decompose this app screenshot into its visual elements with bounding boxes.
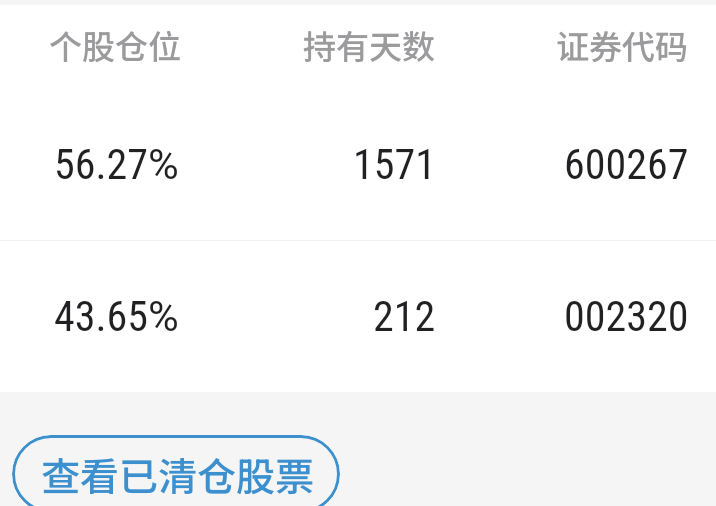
staticText: 个股仓位: [49, 21, 181, 69]
staticText: 证券代码: [556, 21, 688, 69]
staticText: 43.65%: [54, 292, 179, 341]
staticText: 查看已清仓股票: [41, 446, 315, 502]
staticText: 1571: [353, 140, 436, 189]
button[interactable]: 56.27%: [0, 89, 716, 240]
button[interactable]: 查看已清仓股票: [12, 435, 340, 506]
staticText: 600267: [564, 140, 689, 189]
staticText: 56.27%: [54, 140, 179, 189]
staticText: 212: [373, 292, 436, 341]
staticText: 002320: [564, 292, 689, 341]
button[interactable]: 43.65%: [0, 241, 716, 392]
staticText: 持有天数: [303, 21, 435, 69]
